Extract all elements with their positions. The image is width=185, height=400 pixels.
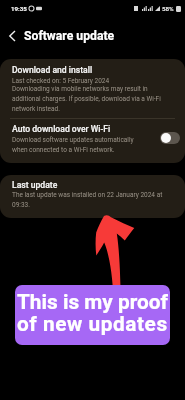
staticText: Software update [24,29,115,43]
button[interactable]: This is my proof [15,285,170,345]
button[interactable]: Download and install [0,59,185,118]
staticText: Last checked on: 5 February 2024 [12,77,110,85]
staticText: Auto download over Wi-Fi [12,124,111,134]
staticText: This is my proof [17,290,168,314]
staticText: Last update [12,180,58,190]
button[interactable]: Back [0,24,24,48]
button[interactable]: Auto download over Wi-Fi [160,132,180,144]
staticText: Download software updates automatically … [12,136,138,153]
staticText: The last update was installed on 22 Janu… [12,191,173,208]
staticText: Download and install [12,65,93,75]
staticText: 58% [162,5,174,12]
staticText: of new updates [17,312,168,336]
button[interactable]: Auto download over Wi-Fi [0,119,185,163]
button[interactable]: Last update [0,175,185,218]
staticText: Downloading via mobile networks may resu… [12,85,173,112]
staticText: 19:35 [11,5,27,12]
